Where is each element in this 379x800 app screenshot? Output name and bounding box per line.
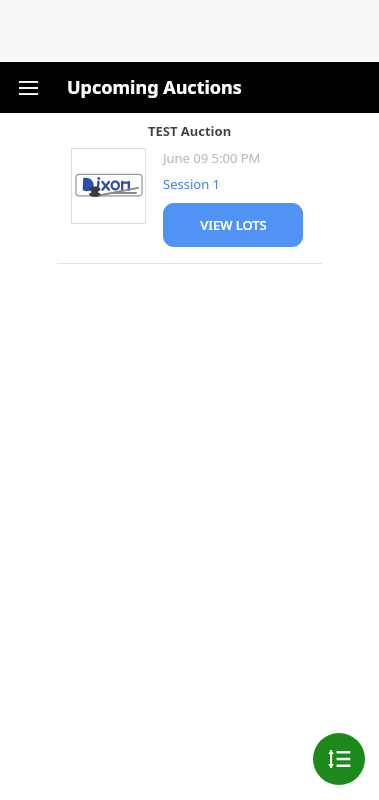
button[interactable]: Sort auctions xyxy=(313,733,365,785)
button[interactable]: Open navigation menu xyxy=(10,70,46,106)
button[interactable]: Session 1 xyxy=(163,175,220,193)
staticText: Upcoming Auctions xyxy=(67,75,242,100)
staticText: VIEW LOTS xyxy=(200,216,267,234)
button[interactable]: Auction logo xyxy=(71,148,146,224)
staticText: TEST Auction xyxy=(148,122,232,140)
button[interactable]: VIEW LOTS xyxy=(163,203,303,247)
staticText: June 09 5:00 PM xyxy=(163,149,261,167)
